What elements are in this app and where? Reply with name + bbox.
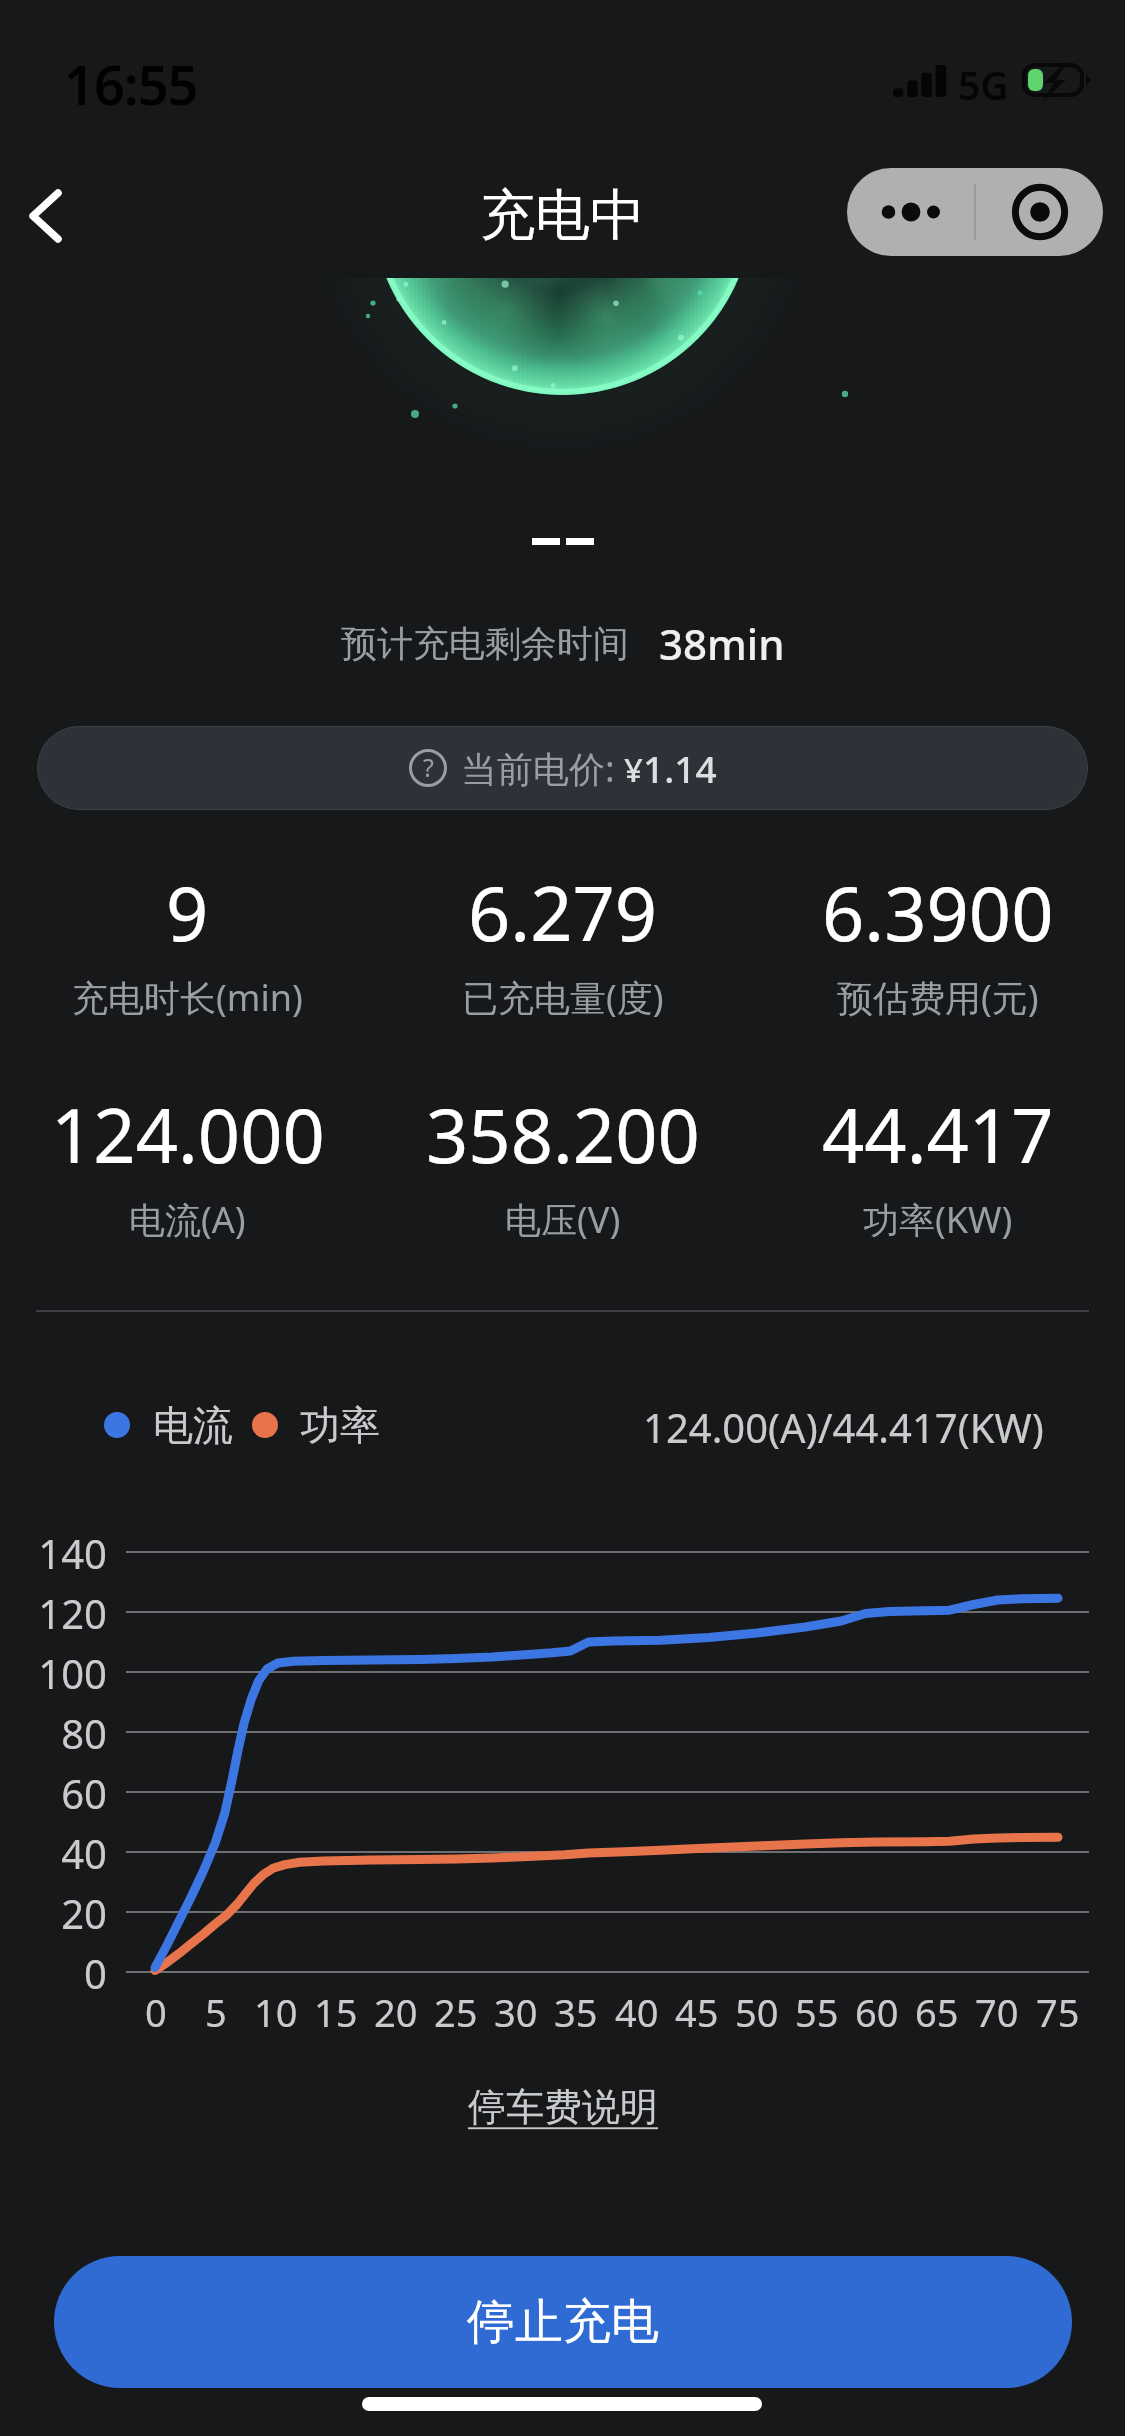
staticText: 电流(A): [129, 1195, 246, 1244]
staticText: 60: [61, 1766, 107, 1820]
staticText: 44.417: [822, 1084, 1054, 1185]
staticText: 100: [38, 1646, 107, 1700]
staticText: 65: [915, 1986, 959, 2038]
staticText: 10: [254, 1986, 298, 2038]
staticText: 80: [61, 1706, 107, 1760]
staticText: 电压(V): [505, 1195, 621, 1244]
staticText: 20: [61, 1886, 107, 1940]
staticText: 5G: [958, 58, 1009, 111]
button[interactable]: More options: [847, 168, 974, 256]
staticText: 40: [61, 1826, 107, 1880]
staticText: 60: [855, 1986, 899, 2038]
staticText: 6.3900: [822, 862, 1054, 963]
staticText: 充电时长(min): [72, 973, 303, 1022]
staticText: 25: [434, 1986, 478, 2038]
staticText: 预估费用(元): [837, 973, 1039, 1022]
staticText: 9: [166, 862, 209, 963]
staticText: 35: [554, 1986, 598, 2038]
staticText: 电流: [153, 1400, 233, 1450]
staticText: 6.279: [468, 862, 658, 963]
staticText: 124.000: [51, 1084, 325, 1185]
staticText: 30: [494, 1986, 538, 2038]
staticText: 124.00(A)/44.417(KW): [643, 1400, 1044, 1450]
staticText: 45: [675, 1986, 719, 2038]
staticText: 0: [145, 1986, 167, 2038]
staticText: ¥: [624, 747, 643, 792]
staticText: 38min: [659, 615, 785, 672]
staticText: 1.14: [643, 743, 717, 793]
staticText: 40: [615, 1986, 659, 2038]
staticText: ?: [423, 750, 434, 784]
button[interactable]: Close mini program: [976, 168, 1103, 256]
staticText: 预计充电剩余时间: [341, 621, 629, 666]
staticText: 已充电量(度): [462, 973, 664, 1022]
staticText: 功率: [300, 1400, 380, 1450]
button[interactable]: 停止充电: [54, 2256, 1072, 2388]
button[interactable]: Back: [0, 160, 96, 270]
staticText: 16:55: [64, 47, 198, 121]
button[interactable]: 停车费说明: [468, 2083, 658, 2131]
staticText: 55: [795, 1986, 839, 2038]
staticText: 358.200: [426, 1084, 700, 1185]
staticText: 70: [975, 1986, 1019, 2038]
staticText: 15: [314, 1986, 358, 2038]
staticText: 75: [1036, 1986, 1080, 2038]
staticText: 0: [84, 1946, 107, 2000]
staticText: 120: [38, 1586, 107, 1640]
staticText: 当前电价:: [461, 744, 615, 793]
staticText: 140: [38, 1526, 107, 1580]
button[interactable]: ?: [37, 726, 1088, 810]
staticText: 停止充电: [467, 2292, 659, 2352]
staticText: 功率(KW): [863, 1195, 1013, 1244]
staticText: 20: [374, 1986, 418, 2038]
staticText: 50: [735, 1986, 779, 2038]
staticText: 5: [205, 1986, 227, 2038]
staticText: 充电中: [480, 181, 645, 250]
